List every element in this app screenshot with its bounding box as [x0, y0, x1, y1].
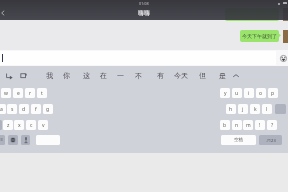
- staticText: 这: [83, 71, 90, 80]
- button[interactable]: h: [226, 104, 236, 114]
- staticText: 你: [63, 71, 70, 80]
- button[interactable]: ?: [267, 120, 277, 130]
- staticText: 但: [199, 71, 206, 80]
- button[interactable]: Back: [0, 10, 6, 16]
- button[interactable]: [275, 104, 286, 114]
- staticText: o: [259, 90, 263, 97]
- button[interactable]: y: [220, 88, 230, 98]
- staticText: !: [259, 122, 261, 129]
- staticText: g: [46, 106, 50, 113]
- staticText: x: [18, 122, 21, 129]
- staticText: b: [223, 122, 227, 129]
- button[interactable]: Emoji: [280, 55, 287, 62]
- button[interactable]: 我: [46, 68, 53, 82]
- button[interactable]: e: [13, 88, 23, 98]
- staticText: 今天: [174, 71, 188, 80]
- button[interactable]: 这: [83, 68, 90, 82]
- button[interactable]: s: [7, 104, 17, 114]
- staticText: r: [29, 90, 32, 97]
- button[interactable]: u: [232, 88, 242, 98]
- staticText: k: [254, 106, 257, 113]
- button[interactable]: k: [250, 104, 260, 114]
- button[interactable]: m: [243, 120, 253, 130]
- button[interactable]: t: [37, 88, 47, 98]
- button[interactable]: r: [25, 88, 35, 98]
- staticText: j: [242, 106, 244, 113]
- staticText: m: [246, 122, 251, 129]
- button[interactable]: Voice input: [21, 135, 30, 145]
- button[interactable]: [0, 51, 276, 65]
- staticText: d: [22, 106, 26, 113]
- staticText: 123: [0, 138, 3, 142]
- button[interactable]: d: [19, 104, 29, 114]
- button[interactable]: g: [43, 104, 53, 114]
- button[interactable]: a: [0, 104, 6, 114]
- staticText: 不: [135, 71, 142, 80]
- staticText: w: [4, 90, 8, 97]
- staticText: 是: [219, 71, 226, 80]
- staticText: y: [224, 90, 227, 97]
- button[interactable]: c: [26, 120, 36, 130]
- staticText: l: [266, 106, 268, 113]
- staticText: t: [41, 90, 43, 97]
- staticText: u: [235, 90, 239, 97]
- button[interactable]: 有: [157, 68, 164, 82]
- staticText: e: [17, 90, 20, 97]
- button[interactable]: x: [14, 120, 24, 130]
- button[interactable]: b: [220, 120, 230, 130]
- staticText: z: [7, 122, 10, 129]
- button[interactable]: l: [262, 104, 272, 114]
- button[interactable]: n: [232, 120, 242, 130]
- button[interactable]: 是: [219, 68, 226, 82]
- staticText: 今天下午就到了: [242, 33, 277, 39]
- staticText: v: [42, 122, 45, 129]
- staticText: p: [271, 90, 275, 97]
- button[interactable]: 空格: [221, 135, 256, 145]
- staticText: 01:08: [139, 1, 149, 6]
- staticText: n: [235, 122, 239, 129]
- button[interactable]: Redo: [20, 72, 27, 79]
- button[interactable]: 但: [199, 68, 206, 82]
- staticText: c: [30, 122, 33, 129]
- button[interactable]: w: [1, 88, 11, 98]
- button[interactable]: 123: [0, 135, 5, 145]
- button[interactable]: !: [255, 120, 265, 130]
- staticText: 有: [157, 71, 164, 80]
- button[interactable]: i: [244, 88, 254, 98]
- staticText: h: [229, 106, 233, 113]
- staticText: i: [248, 90, 250, 97]
- button[interactable]: z: [3, 120, 13, 130]
- staticText: f: [35, 106, 37, 113]
- button[interactable]: Change keyboard: [8, 135, 18, 145]
- button[interactable]: 今天: [174, 68, 188, 82]
- staticText: 空格: [234, 137, 244, 143]
- button[interactable]: j: [238, 104, 248, 114]
- button[interactable]: o: [256, 88, 266, 98]
- staticText: s: [11, 106, 14, 113]
- button[interactable]: Undo: [6, 72, 13, 79]
- staticText: .?123: [266, 138, 276, 143]
- staticText: a: [0, 106, 3, 113]
- button[interactable]: 今天下午就到了: [240, 30, 279, 42]
- staticText: 嗨嗨: [138, 9, 150, 17]
- button[interactable]: 你: [63, 68, 70, 82]
- button[interactable]: 在: [100, 68, 107, 82]
- button[interactable]: 不: [135, 68, 142, 82]
- button[interactable]: p: [268, 88, 278, 98]
- button[interactable]: Expand candidates: [231, 71, 241, 81]
- staticText: 一: [117, 71, 124, 80]
- button[interactable]: v: [38, 120, 48, 130]
- staticText: 我: [46, 71, 53, 80]
- button[interactable]: .?123: [259, 135, 282, 145]
- staticText: ?: [271, 122, 274, 129]
- staticText: 在: [100, 71, 107, 80]
- button[interactable]: [0, 120, 2, 130]
- button[interactable]: f: [31, 104, 41, 114]
- button[interactable]: 一: [117, 68, 124, 82]
